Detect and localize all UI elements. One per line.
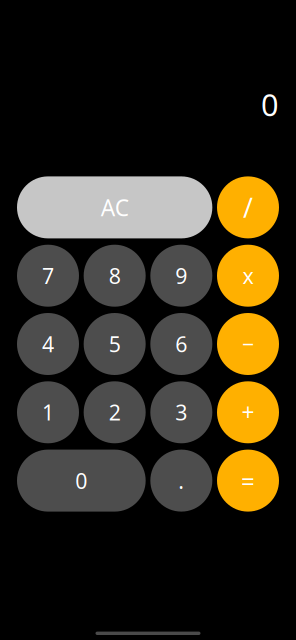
button[interactable]: . — [150, 450, 212, 512]
button[interactable]: − — [217, 313, 279, 375]
staticText: x — [242, 261, 253, 290]
staticText: 4 — [42, 330, 54, 358]
button[interactable]: 8 — [84, 245, 146, 307]
button[interactable]: 0 — [17, 450, 146, 512]
staticText: . — [178, 466, 184, 495]
staticText: 8 — [109, 261, 121, 290]
staticText: 9 — [175, 261, 187, 290]
button[interactable]: 1 — [17, 381, 79, 443]
staticText: 6 — [175, 330, 187, 358]
button[interactable]: AC — [17, 176, 212, 238]
button[interactable]: / — [217, 176, 279, 238]
staticText: AC — [101, 192, 129, 222]
button[interactable]: + — [217, 381, 279, 443]
staticText: 0 — [75, 466, 87, 495]
staticText: 5 — [109, 330, 121, 358]
staticText: 2 — [109, 398, 121, 426]
staticText: − — [242, 330, 254, 358]
button[interactable]: 2 — [84, 381, 146, 443]
button[interactable]: 4 — [17, 313, 79, 375]
button[interactable]: 5 — [84, 313, 146, 375]
button[interactable]: 3 — [150, 381, 212, 443]
staticText: 1 — [42, 398, 54, 426]
button[interactable]: 9 — [150, 245, 212, 307]
button[interactable]: x — [217, 245, 279, 307]
staticText: = — [241, 465, 255, 497]
staticText: + — [241, 397, 254, 427]
staticText: 0 — [261, 84, 279, 125]
button[interactable]: 6 — [150, 313, 212, 375]
button[interactable]: = — [217, 450, 279, 512]
button[interactable]: 7 — [17, 245, 79, 307]
staticText: / — [243, 190, 253, 225]
staticText: 3 — [175, 398, 187, 426]
staticText: 7 — [42, 261, 54, 290]
